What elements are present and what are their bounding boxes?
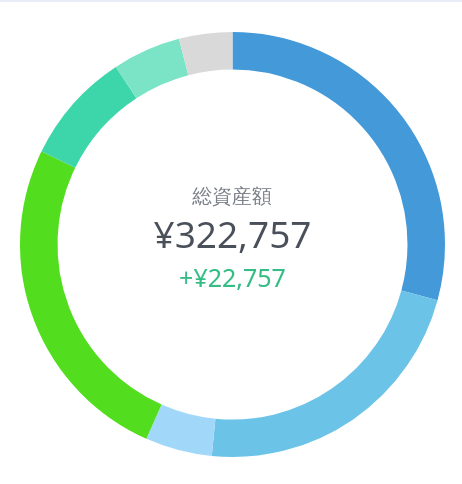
staticText: +¥22,757 (179, 260, 286, 294)
staticText: 総資産額 (192, 184, 272, 209)
button[interactable]: 資産構成グラフ 総資産額 322,757円 (20, 32, 445, 457)
staticText: ¥322,757 (153, 208, 312, 258)
